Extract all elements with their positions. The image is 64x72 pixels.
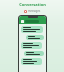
staticText: messages [28,9,41,13]
button[interactable] [21,26,43,33]
staticText: Conversation [19,2,46,7]
button[interactable] [24,51,44,56]
button[interactable] [21,58,42,65]
other: App icon [24,10,27,13]
button[interactable]: Menu [21,20,24,23]
button[interactable] [26,35,44,40]
button[interactable] [21,42,42,49]
